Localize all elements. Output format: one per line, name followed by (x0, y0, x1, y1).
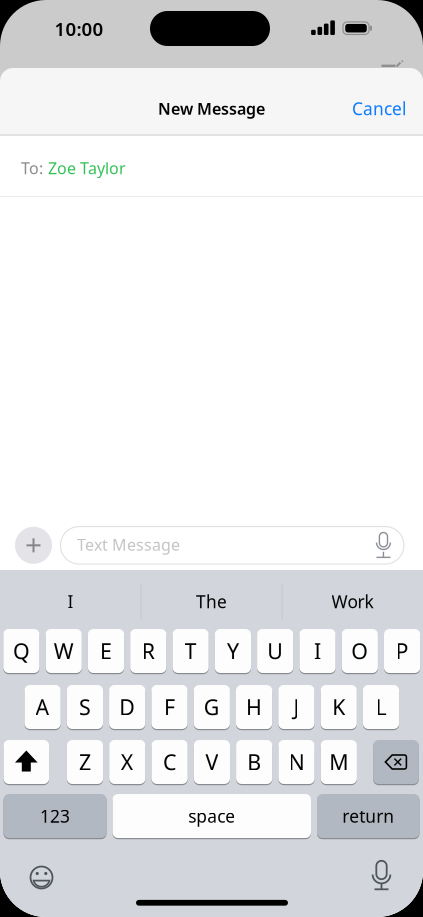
button[interactable]: Work (287, 579, 417, 623)
button[interactable]: space (112, 793, 311, 839)
staticText: A (36, 693, 50, 721)
button[interactable]: W (46, 628, 82, 674)
staticText: 123 (40, 804, 70, 827)
staticText: G (204, 693, 220, 721)
button[interactable]: Y (215, 628, 251, 674)
button[interactable]: V (194, 739, 230, 785)
staticText: Z (79, 748, 91, 776)
button[interactable]: Cancel (341, 86, 417, 130)
staticText: 10:00 (54, 16, 103, 41)
staticText: Cancel (352, 97, 406, 120)
staticText: M (329, 748, 348, 776)
staticText: Y (227, 637, 239, 665)
staticText: B (247, 748, 261, 776)
staticText: H (246, 693, 262, 721)
button[interactable]: Add attachment (15, 527, 52, 564)
staticText: C (163, 748, 176, 776)
button[interactable]: D (109, 684, 145, 730)
staticText: Work (331, 590, 373, 613)
staticText: U (267, 637, 283, 665)
button[interactable]: I (5, 579, 135, 623)
staticText: O (351, 637, 368, 665)
staticText: Q (13, 637, 30, 665)
staticText: To: (21, 157, 43, 179)
button[interactable]: Z (67, 739, 103, 785)
button[interactable]: M (321, 739, 357, 785)
staticText: E (100, 637, 112, 665)
button[interactable]: T (172, 628, 209, 674)
button[interactable]: Emoji (29, 865, 53, 889)
staticText: T (185, 637, 197, 665)
staticText: I (314, 637, 321, 665)
staticText: Text Message (77, 534, 180, 555)
staticText: D (119, 693, 135, 721)
button[interactable]: Text Message (60, 526, 404, 564)
staticText: R (142, 637, 155, 665)
button[interactable]: A (24, 684, 61, 730)
button[interactable]: N (278, 739, 315, 785)
button[interactable]: K (321, 684, 357, 730)
button[interactable]: I (299, 628, 336, 674)
staticText: P (396, 637, 409, 665)
staticText: New Message (158, 98, 265, 119)
staticText: L (375, 693, 386, 721)
button[interactable]: X (109, 739, 145, 785)
button[interactable]: O (342, 628, 378, 674)
staticText: F (164, 693, 175, 721)
button[interactable]: E (88, 628, 124, 674)
button[interactable]: H (236, 684, 272, 730)
staticText: The (196, 590, 227, 613)
staticText: S (79, 693, 91, 721)
button[interactable]: Shift (3, 739, 49, 785)
staticText: space (188, 804, 235, 827)
staticText: V (205, 748, 218, 776)
button[interactable]: J (278, 684, 314, 730)
button[interactable]: The (146, 579, 276, 623)
button[interactable]: U (257, 628, 293, 674)
staticText: X (121, 748, 134, 776)
button[interactable]: L (363, 684, 399, 730)
button[interactable]: 123 (3, 793, 106, 839)
button[interactable]: To: (0, 138, 423, 198)
button[interactable]: G (194, 684, 230, 730)
button[interactable]: Delete (373, 739, 419, 785)
staticText: return (342, 804, 394, 827)
button[interactable]: F (151, 684, 188, 730)
button[interactable]: R (130, 628, 166, 674)
button[interactable]: P (384, 628, 420, 674)
button[interactable]: C (151, 739, 188, 785)
staticText: W (54, 637, 74, 665)
button[interactable]: return (317, 793, 419, 839)
button[interactable]: B (236, 739, 272, 785)
staticText: K (332, 693, 345, 721)
button[interactable]: Dictate (364, 860, 398, 894)
staticText: J (293, 693, 299, 721)
button[interactable]: S (67, 684, 103, 730)
staticText: N (288, 748, 304, 776)
staticText: Zoe Taylor (48, 157, 126, 179)
staticText: I (67, 590, 73, 613)
button[interactable]: Q (3, 628, 39, 674)
